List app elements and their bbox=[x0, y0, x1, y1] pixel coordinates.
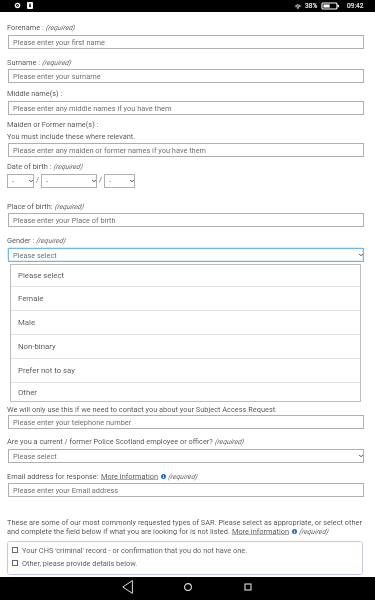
button[interactable]: Your CHS 'criminal' record - or confirma… bbox=[12, 546, 248, 554]
button[interactable]: Please enter your first name bbox=[8, 35, 364, 49]
staticText: Female bbox=[18, 294, 44, 303]
staticText: Are you a current / former Police Scotla… bbox=[7, 437, 244, 446]
staticText: - bbox=[46, 177, 49, 186]
button[interactable]: Please enter your Email address bbox=[8, 483, 364, 497]
button[interactable]: Home bbox=[178, 577, 198, 597]
button[interactable]: Other, please provide details below. bbox=[12, 559, 138, 567]
button[interactable]: Please enter your telephone number bbox=[8, 415, 364, 429]
staticText: Your CHS 'criminal' record - or confirma… bbox=[22, 546, 248, 554]
button[interactable]: Please select bbox=[10, 264, 361, 286]
button[interactable]: - bbox=[41, 174, 97, 188]
button[interactable]: Other bbox=[10, 383, 361, 402]
button[interactable]: Recent apps bbox=[238, 577, 258, 597]
button[interactable]: More information bbox=[101, 472, 159, 481]
button[interactable]: Non-binary bbox=[10, 335, 361, 358]
staticText: More information bbox=[101, 472, 159, 481]
staticText: Forename : (required) bbox=[7, 23, 75, 32]
button[interactable]: Please enter any middle names if you hav… bbox=[8, 101, 364, 115]
button[interactable]: Back bbox=[118, 577, 138, 597]
staticText: Gender : (required) bbox=[7, 236, 66, 245]
staticText: Date of birth : (required) bbox=[7, 162, 83, 171]
button[interactable]: - bbox=[104, 174, 135, 188]
button[interactable]: Please select bbox=[8, 248, 364, 262]
staticText: (required) bbox=[299, 528, 328, 536]
staticText: Maiden or Former name(s) : bbox=[7, 120, 99, 129]
staticText: Other bbox=[18, 388, 37, 397]
staticText: Male bbox=[18, 318, 36, 327]
staticText: Other, please provide details below. bbox=[22, 559, 138, 567]
staticText: Please enter your first name bbox=[13, 38, 105, 47]
staticText: Non-binary bbox=[18, 342, 56, 351]
staticText: Please enter your Place of birth bbox=[13, 216, 116, 225]
staticText: Prefer not to say bbox=[18, 366, 75, 375]
button[interactable]: More information bbox=[232, 527, 290, 536]
staticText: (required) bbox=[168, 473, 197, 481]
staticText: Please select bbox=[18, 271, 65, 280]
staticText: Please enter any maiden or former names … bbox=[13, 146, 207, 155]
staticText: Please enter your Email address bbox=[13, 486, 119, 495]
staticText: Please enter your telephone number bbox=[13, 418, 132, 427]
button[interactable]: Please select bbox=[8, 449, 364, 463]
staticText: Please select bbox=[13, 251, 57, 260]
staticText: Please enter your surname bbox=[13, 72, 101, 81]
button[interactable]: Please enter your Place of birth bbox=[8, 213, 364, 227]
staticText: 09:42 bbox=[347, 2, 364, 10]
staticText: You must include these where relevant. bbox=[7, 132, 136, 141]
staticText: Email address for response: bbox=[7, 472, 101, 481]
staticText: - bbox=[12, 177, 15, 186]
staticText: Middle name(s) : bbox=[7, 89, 63, 98]
staticText: 38% bbox=[305, 2, 318, 10]
staticText: Surname : (required) bbox=[7, 58, 71, 67]
staticText: Please select bbox=[13, 452, 57, 461]
staticText: / bbox=[36, 175, 40, 184]
button[interactable]: Male bbox=[10, 311, 361, 334]
staticText: and complete the field below if what you… bbox=[7, 527, 232, 536]
staticText: We will only use this if we need to cont… bbox=[7, 405, 278, 414]
staticText: / bbox=[99, 175, 103, 184]
staticText: More information bbox=[232, 527, 290, 536]
staticText: Please enter any middle names if you hav… bbox=[13, 104, 172, 113]
button[interactable]: Please enter any maiden or former names … bbox=[8, 143, 364, 157]
staticText: - bbox=[109, 177, 112, 186]
button[interactable]: Prefer not to say bbox=[10, 359, 361, 382]
button[interactable]: - bbox=[7, 174, 34, 188]
staticText: Place of birth: (required) bbox=[7, 202, 84, 211]
button[interactable]: Please enter your surname bbox=[8, 69, 364, 83]
button[interactable]: Female bbox=[10, 287, 361, 310]
staticText: These are some of our most commonly requ… bbox=[7, 518, 362, 527]
